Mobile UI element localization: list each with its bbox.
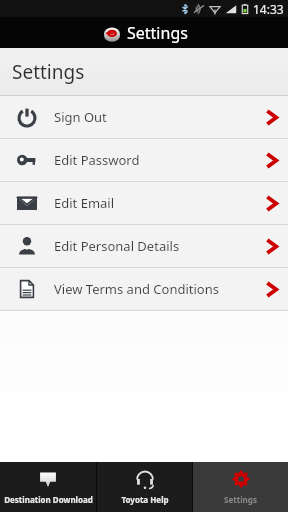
staticText: 14:33 xyxy=(253,1,284,17)
staticText: Edit Email xyxy=(54,194,265,212)
button[interactable]: Settings xyxy=(193,462,288,512)
staticText: Toyota Help xyxy=(121,494,169,505)
button[interactable]: Destination Download xyxy=(0,462,96,512)
button[interactable]: Toyota Help xyxy=(97,462,192,512)
button[interactable]: Edit Personal Details xyxy=(0,225,288,267)
staticText: Edit Personal Details xyxy=(54,237,265,255)
button[interactable]: Edit Email xyxy=(0,182,288,224)
staticText: View Terms and Conditions xyxy=(54,280,265,298)
button[interactable]: Sign Out xyxy=(0,96,288,138)
staticText: Edit Password xyxy=(54,151,265,169)
staticText: Settings xyxy=(127,22,188,44)
staticText: Settings xyxy=(224,494,257,505)
staticText: Sign Out xyxy=(54,108,265,126)
button[interactable]: Edit Password xyxy=(0,139,288,181)
button[interactable]: View Terms and Conditions xyxy=(0,268,288,310)
staticText: Destination Download xyxy=(4,494,93,505)
staticText: Settings xyxy=(12,59,85,85)
